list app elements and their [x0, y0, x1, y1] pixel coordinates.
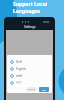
button[interactable]: हिन्दी — [7, 58, 52, 65]
staticText: Support Local — [13, 1, 48, 8]
staticText: English — [16, 67, 27, 71]
button[interactable]: OK — [39, 87, 49, 92]
staticText: OK — [42, 88, 46, 91]
button[interactable]: English — [7, 65, 52, 72]
staticText: Settings — [24, 25, 36, 29]
staticText: मराठी — [16, 74, 23, 78]
staticText: CANCEL — [27, 87, 36, 92]
staticText: हिन्दी — [16, 60, 22, 64]
staticText: Languages — [13, 8, 41, 15]
staticText: ಕನ್ನಡ — [16, 81, 22, 84]
button[interactable]: CANCEL — [27, 87, 36, 92]
button[interactable]: ಕನ್ನಡ — [7, 79, 52, 86]
button[interactable]: मराठी — [7, 72, 52, 79]
